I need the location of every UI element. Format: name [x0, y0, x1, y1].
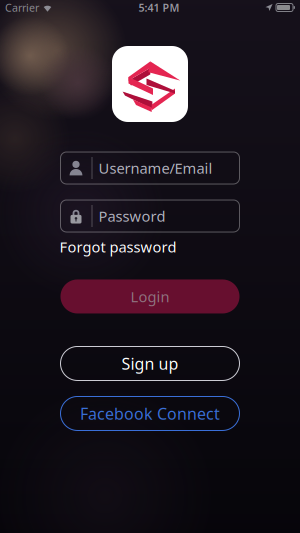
staticText: 5:41 PM — [138, 0, 179, 15]
staticText: Sign up — [121, 353, 178, 374]
staticText: Carrier — [5, 0, 39, 15]
button[interactable]: Password — [60, 200, 239, 232]
button[interactable]: Forgot password — [59, 237, 176, 256]
button[interactable]: Sign up — [60, 346, 239, 380]
staticText: Password — [98, 206, 165, 226]
staticText: Username/Email — [98, 158, 212, 178]
button[interactable]: Login — [60, 279, 239, 313]
staticText: Facebook Connect — [80, 403, 220, 424]
button[interactable]: Facebook Connect — [60, 396, 239, 430]
staticText: Forgot password — [59, 237, 176, 256]
staticText: Login — [130, 287, 169, 306]
button[interactable]: Username/Email — [60, 152, 239, 184]
